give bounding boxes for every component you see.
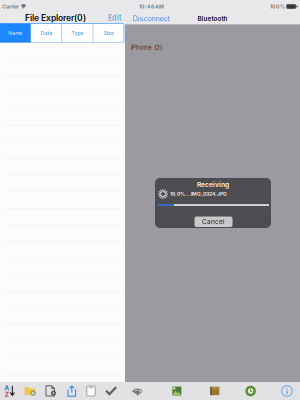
- button[interactable]: Edit: [106, 12, 122, 23]
- button[interactable]: Name: [0, 23, 31, 43]
- button[interactable]: Wi-Fi: [128, 382, 146, 400]
- staticText: Carrier: [2, 3, 19, 10]
- button[interactable]: Sort: [1, 382, 19, 400]
- staticText: Type: [72, 30, 84, 36]
- button[interactable]: Info: [278, 382, 296, 400]
- staticText: Date: [40, 30, 52, 36]
- button[interactable]: Date: [31, 23, 62, 43]
- staticText: 10:46 AM: [139, 3, 164, 10]
- staticText: Disconnect: [132, 14, 169, 23]
- staticText: File Explorer(0): [25, 13, 86, 23]
- button[interactable]: Status: [242, 382, 260, 400]
- button[interactable]: Document Options: [42, 382, 60, 400]
- staticText: Edit: [108, 13, 121, 22]
- staticText: Cancel: [202, 218, 225, 226]
- button[interactable]: Size: [93, 23, 124, 43]
- button[interactable]: Type: [62, 23, 93, 43]
- staticText: Bluetooth: [197, 15, 227, 22]
- button[interactable]: Archive: [206, 382, 224, 400]
- button[interactable]: Share: [63, 382, 81, 400]
- button[interactable]: Cancel: [194, 216, 232, 227]
- button[interactable]: Photos: [168, 382, 186, 400]
- staticText: 100%: [270, 3, 285, 10]
- staticText: 16.0%...IMG_0324.JPG: [170, 191, 227, 197]
- button[interactable]: Select All: [102, 382, 120, 400]
- button[interactable]: New Folder: [21, 382, 39, 400]
- staticText: iPhone (2): [131, 44, 162, 51]
- staticText: A: [4, 384, 9, 392]
- staticText: Size: [104, 30, 114, 36]
- staticText: Receiving: [197, 180, 229, 189]
- button[interactable]: Paste: [82, 382, 100, 400]
- staticText: Name: [8, 30, 22, 36]
- staticText: Z: [5, 390, 9, 398]
- button[interactable]: Disconnect: [129, 13, 173, 24]
